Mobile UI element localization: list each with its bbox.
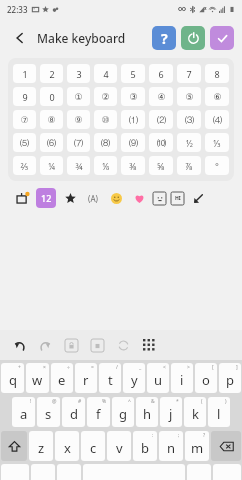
button[interactable]: ⅞ (177, 156, 201, 175)
button[interactable]: ⅔ (13, 156, 36, 175)
button[interactable]: c (81, 431, 105, 461)
button[interactable]: v (107, 431, 131, 461)
button[interactable]: ⑤ (177, 87, 201, 106)
button[interactable]: ④ (149, 87, 173, 106)
button[interactable]: @ (37, 397, 60, 427)
button[interactable]: ⑻ (94, 133, 117, 152)
button[interactable]: Reset (181, 26, 205, 50)
button[interactable]: ① (67, 87, 90, 106)
button[interactable]: 0 (40, 87, 63, 106)
button[interactable]: 12 (36, 188, 56, 208)
button[interactable]: ⑽ (149, 133, 173, 152)
button[interactable]: Backspace (211, 431, 241, 461)
button[interactable]: Tools (12, 188, 32, 208)
button[interactable]: = (75, 363, 97, 393)
button[interactable]: ) (208, 397, 230, 427)
button[interactable]: ½ (177, 133, 201, 152)
button[interactable]: 9 (13, 87, 36, 106)
button[interactable]: Kaomoji (153, 192, 166, 205)
button[interactable]: Keypad (138, 334, 160, 356)
button[interactable]: Stickers (130, 189, 148, 207)
staticText: ⅞ (185, 160, 193, 172)
button[interactable]: ③ (121, 87, 145, 106)
button[interactable]: x (55, 431, 79, 461)
button[interactable]: ⅜ (121, 156, 145, 175)
button[interactable]: ° (205, 156, 229, 175)
button[interactable]: > (171, 363, 193, 393)
button[interactable]: 2 (40, 64, 63, 83)
button[interactable]: 3 (67, 64, 90, 83)
button[interactable]: * (160, 397, 182, 427)
button[interactable]: Redo (34, 334, 56, 356)
button[interactable]: Undo (8, 334, 30, 356)
staticText: k (192, 405, 199, 423)
staticText: g (119, 405, 127, 423)
staticText: p (226, 371, 234, 389)
button[interactable]: Refresh (112, 334, 134, 356)
button[interactable]: ⑧ (40, 110, 63, 129)
button[interactable]: < (147, 363, 169, 393)
button[interactable]: Shift (1, 431, 27, 461)
button[interactable]: _ (123, 363, 145, 393)
button[interactable]: # (62, 397, 85, 427)
button[interactable]: ⑸ (13, 133, 36, 152)
button[interactable]: + (1, 363, 24, 393)
button[interactable]: ? (185, 431, 209, 461)
button[interactable]: Help (152, 26, 176, 50)
button[interactable]: Import (189, 189, 207, 207)
button[interactable]: 8 (205, 64, 229, 83)
button[interactable]: ⑵ (149, 110, 173, 129)
button[interactable]: Back (8, 26, 32, 50)
button[interactable]: × (26, 363, 49, 393)
button[interactable]: ^ (112, 397, 134, 427)
button[interactable]: 4 (94, 64, 117, 83)
button[interactable]: / (99, 363, 121, 393)
button[interactable]: ⑼ (121, 133, 145, 152)
button[interactable]: ⑨ (67, 110, 90, 129)
button[interactable]: ⑥ (205, 87, 229, 106)
button[interactable]: ; (159, 431, 183, 461)
button[interactable]: ⑺ (67, 133, 90, 152)
button[interactable]: 6 (149, 64, 173, 83)
staticText: (A) (88, 193, 98, 204)
button[interactable]: ] (219, 363, 241, 393)
staticText: ⑧ (47, 115, 56, 125)
button[interactable]: ⅛ (94, 156, 117, 175)
button[interactable]: Favorites (61, 189, 79, 207)
button[interactable]: ÷ (51, 363, 73, 393)
button[interactable]: Delete (86, 334, 108, 356)
button[interactable]: ⑩ (94, 110, 117, 129)
button[interactable]: Emoji (107, 189, 125, 207)
button[interactable]: ⅓ (205, 133, 229, 152)
button[interactable]: 7 (177, 64, 201, 83)
button[interactable]: % (87, 397, 110, 427)
button[interactable]: ⅝ (149, 156, 173, 175)
button[interactable]: z (29, 431, 53, 461)
staticText: 5 (130, 68, 136, 80)
button[interactable]: Confirm (210, 26, 234, 50)
button[interactable]: ¾ (67, 156, 90, 175)
button[interactable]: & (136, 397, 158, 427)
button[interactable]: ! (12, 397, 35, 427)
button[interactable]: ¼ (40, 156, 63, 175)
button[interactable]: [ (195, 363, 217, 393)
button[interactable]: ⑦ (13, 110, 36, 129)
button[interactable]: ⑴ (121, 110, 145, 129)
button[interactable]: ⑷ (205, 110, 229, 129)
button[interactable]: 5 (121, 64, 145, 83)
button[interactable]: ( (184, 397, 206, 427)
button[interactable]: ② (94, 87, 117, 106)
button[interactable]: ⑹ (40, 133, 63, 152)
button[interactable]: (A) (84, 189, 102, 207)
button[interactable]: ⑶ (177, 110, 201, 129)
button[interactable]: 1 (13, 64, 36, 83)
button[interactable]: Lock (60, 334, 82, 356)
button[interactable]: : (133, 431, 157, 461)
button[interactable]: Text (171, 192, 184, 205)
